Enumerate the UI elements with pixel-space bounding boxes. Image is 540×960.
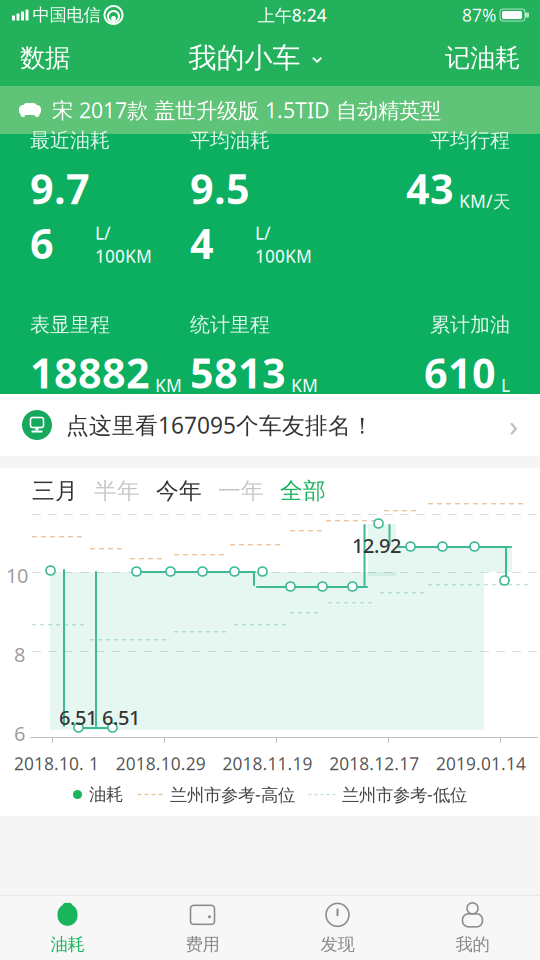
staticText: KM/天: [459, 189, 510, 212]
staticText: 2018.10. 1: [14, 752, 99, 775]
staticText: 中国电信: [32, 4, 100, 26]
staticText: 一年: [218, 477, 264, 505]
staticText: 18882: [30, 345, 150, 400]
staticText: 610: [424, 345, 496, 400]
staticText: 兰州市参考-高位: [170, 783, 295, 806]
button[interactable]: 我的: [405, 893, 540, 960]
staticText: KM: [291, 374, 318, 397]
button[interactable]: 我的小车: [188, 31, 326, 85]
staticText: ⌄: [307, 42, 326, 68]
staticText: 半年: [94, 477, 140, 505]
staticText: 2019.01.14: [436, 752, 526, 775]
staticText: 2018.12.17: [329, 752, 419, 775]
staticText: 统计里程: [190, 312, 270, 337]
staticText: L: [501, 374, 510, 397]
button[interactable]: 三月: [24, 468, 86, 514]
button[interactable]: 数据: [0, 32, 70, 83]
staticText: 2018.10.29: [116, 752, 206, 775]
staticText: 累计加油: [430, 312, 510, 337]
button[interactable]: 费用: [135, 893, 270, 960]
button[interactable]: 宋 2017款 盖世升级版 1.5TID 自动精英型: [0, 86, 540, 134]
staticText: KM: [155, 374, 182, 397]
staticText: 上午8:24: [258, 3, 327, 26]
staticText: 我的小车: [188, 41, 300, 75]
button[interactable]: 全部: [272, 468, 334, 514]
staticText: 油耗: [50, 934, 84, 955]
staticText: 三月: [32, 477, 78, 505]
button[interactable]: 一年: [210, 468, 272, 514]
staticText: 表显里程: [30, 312, 110, 337]
staticText: 记油耗: [445, 42, 520, 73]
staticText: 兰州市参考-低位: [342, 783, 467, 806]
button[interactable]: 油耗: [0, 893, 135, 960]
staticText: 87%: [462, 3, 496, 26]
staticText: 5813: [190, 345, 286, 400]
staticText: 发现: [320, 934, 354, 955]
staticText: 9.54: [190, 161, 250, 270]
staticText: 宋 2017款 盖世升级版 1.5TID 自动精英型: [52, 96, 441, 124]
staticText: L/100KM: [95, 221, 152, 267]
staticText: 2018.11.19: [222, 752, 312, 775]
staticText: 12.92: [352, 532, 401, 559]
button[interactable]: 记油耗: [445, 32, 540, 83]
staticText: 数据: [20, 42, 70, 73]
staticText: 点这里看167095个车友排名！: [66, 410, 374, 440]
staticText: 9.76: [30, 161, 90, 270]
staticText: 我的: [455, 934, 489, 955]
staticText: 平均行程: [430, 128, 510, 153]
staticText: 最近油耗: [30, 128, 110, 153]
button[interactable]: 今年: [148, 468, 210, 514]
staticText: ›: [509, 405, 518, 444]
staticText: 43: [406, 161, 454, 216]
staticText: 6.51 6.51: [59, 704, 140, 731]
button[interactable]: 发现: [270, 893, 405, 960]
staticText: 10: [6, 562, 28, 589]
staticText: 6: [14, 720, 25, 747]
staticText: 今年: [156, 477, 202, 505]
button[interactable]: 点这里看167095个车友排名！: [0, 394, 540, 456]
staticText: 全部: [280, 477, 326, 505]
staticText: 费用: [185, 934, 219, 955]
staticText: 8: [14, 641, 25, 668]
staticText: L/100KM: [255, 221, 312, 267]
button[interactable]: 半年: [86, 468, 148, 514]
staticText: 油耗: [89, 784, 123, 805]
staticText: 平均油耗: [190, 128, 270, 153]
